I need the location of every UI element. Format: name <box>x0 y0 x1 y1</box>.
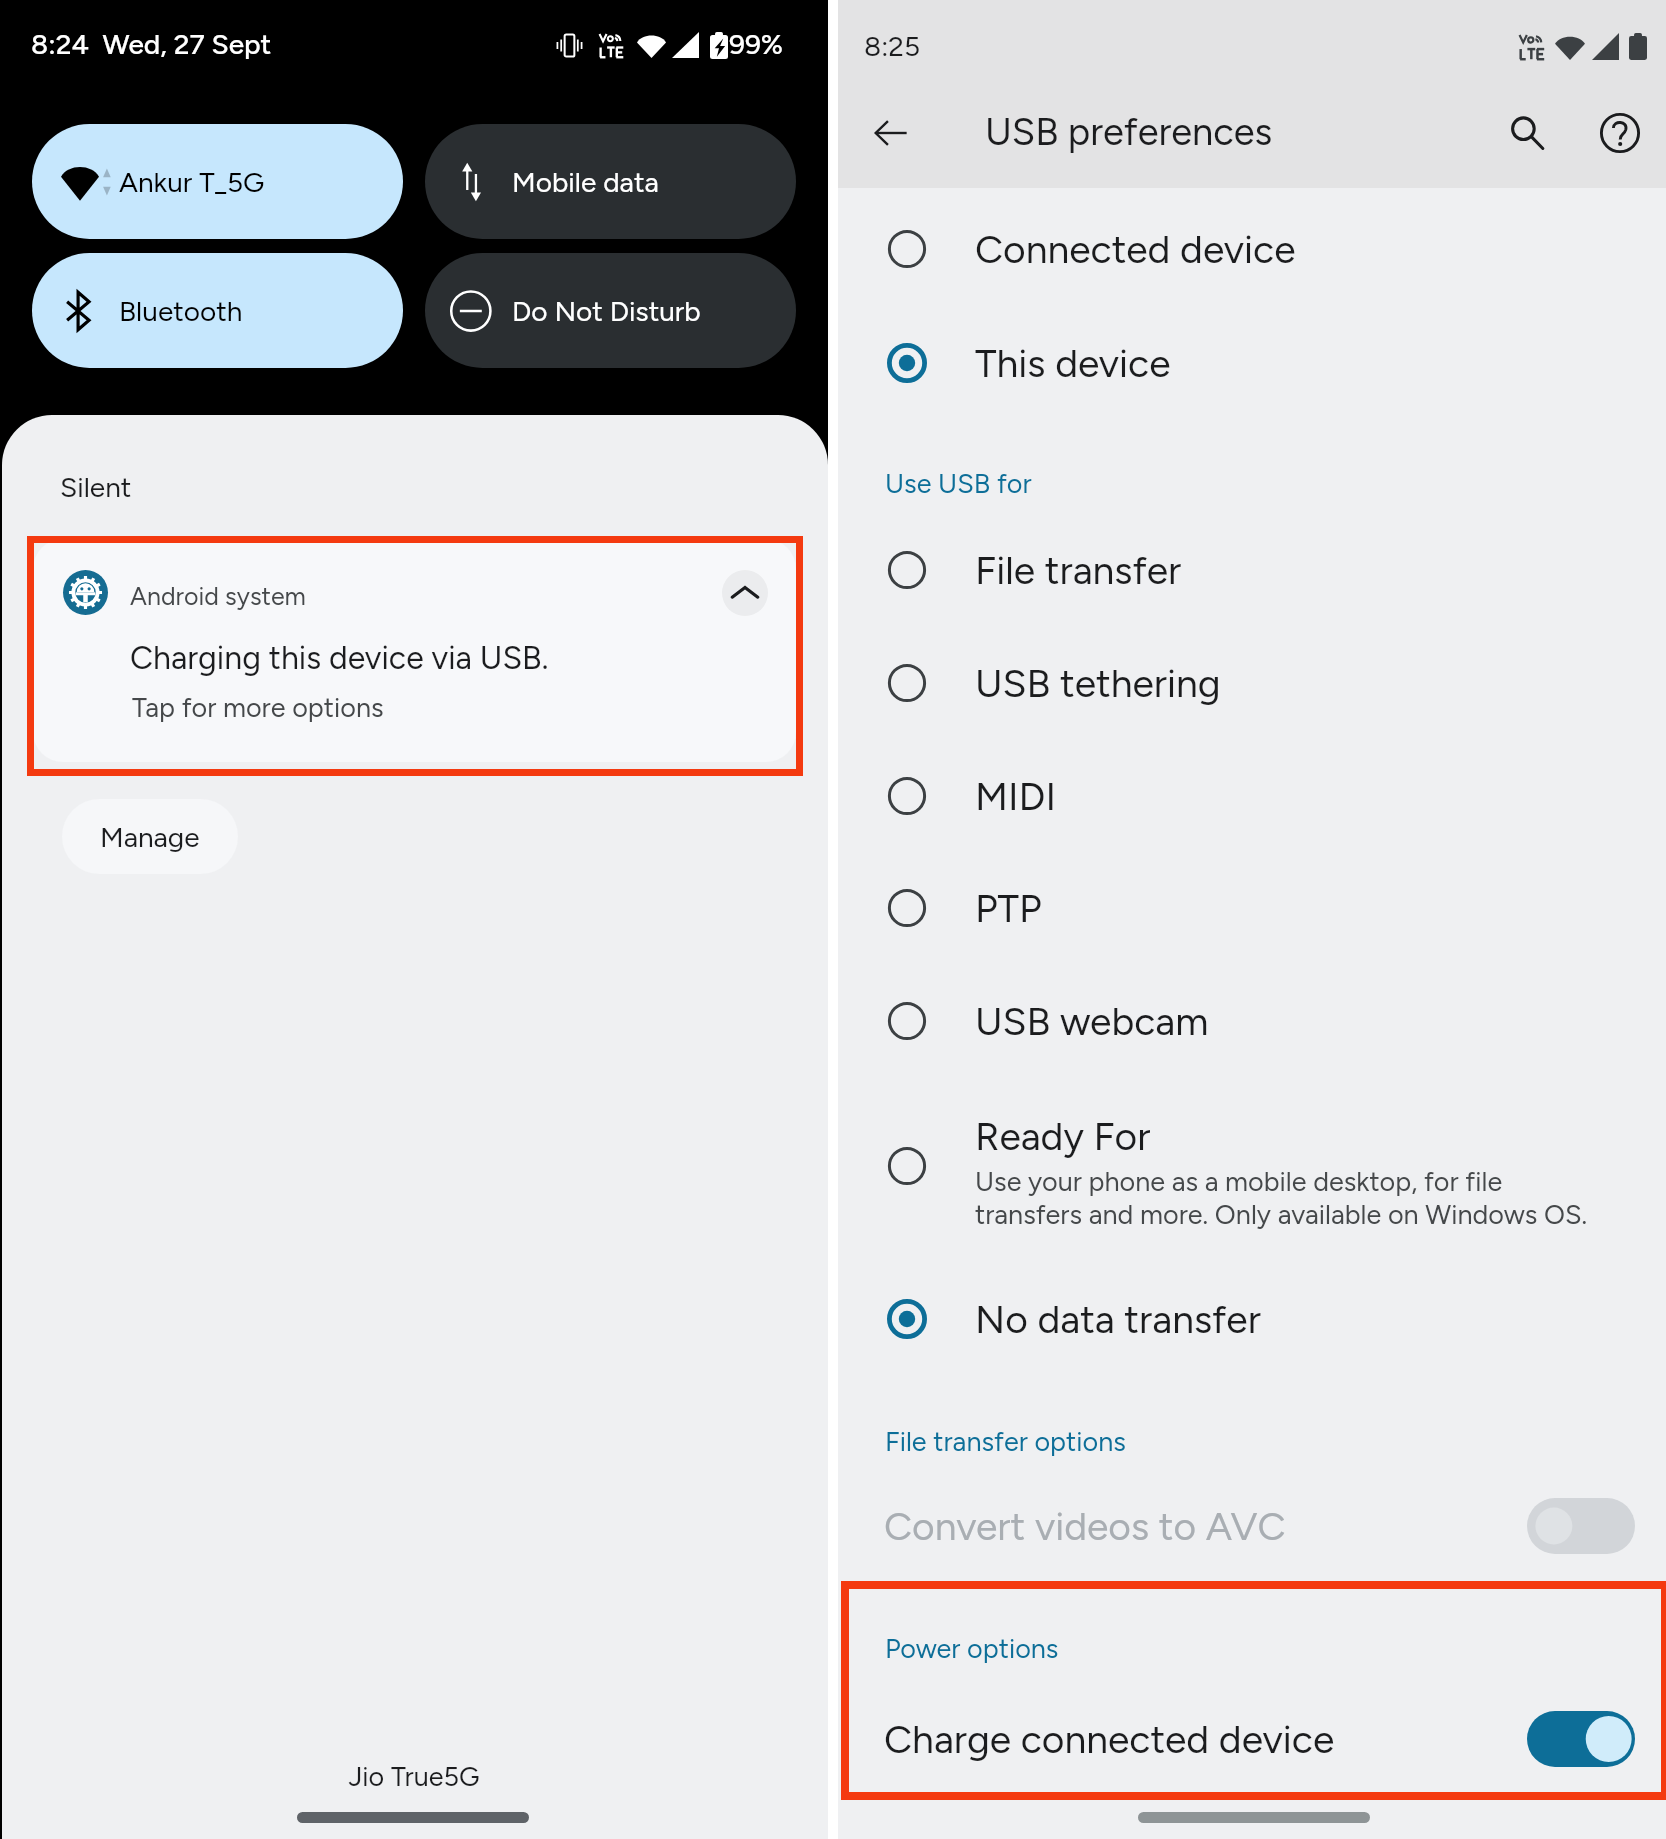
button[interactable]: PTP <box>838 852 1666 964</box>
staticText: Silent <box>60 470 132 504</box>
button[interactable]: No data transfer <box>838 1263 1666 1375</box>
button[interactable]: Android system <box>33 539 796 762</box>
staticText: File transfer options <box>885 1425 1126 1457</box>
button[interactable]: Bluetooth <box>32 253 403 368</box>
staticText: USB tethering <box>975 660 1221 707</box>
staticText: Ready For <box>975 1113 1151 1160</box>
button[interactable]: Ready For <box>838 1080 1666 1264</box>
button[interactable]: Charge connected device <box>838 1683 1666 1795</box>
staticText: Tap for more options <box>132 691 384 723</box>
staticText: USB preferences <box>985 109 1273 155</box>
button[interactable]: Do Not Disturb <box>425 253 796 368</box>
staticText: Jio True5G <box>0 1760 828 1792</box>
staticText: Use USB for <box>885 467 1032 499</box>
button[interactable]: USB tethering <box>838 627 1666 739</box>
button[interactable]: This device <box>838 307 1666 419</box>
staticText: Use your phone as a mobile desktop, for … <box>975 1165 1588 1231</box>
button[interactable]: Connected device <box>838 193 1666 305</box>
button[interactable]: Mobile data <box>425 124 796 239</box>
staticText: Manage <box>100 820 200 854</box>
staticText: Charging this device via USB. <box>130 639 549 677</box>
staticText: This device <box>975 340 1171 387</box>
staticText: Charge connected device <box>884 1716 1335 1763</box>
staticText: Do Not Disturb <box>512 294 701 328</box>
staticText: Convert videos to AVC <box>884 1503 1286 1550</box>
button[interactable]: Convert videos to AVC <box>838 1470 1666 1582</box>
staticText: 8:24 Wed, 27 Sept <box>31 27 272 61</box>
button[interactable]: Ankur T_5G <box>32 124 403 239</box>
staticText: Connected device <box>975 226 1296 273</box>
staticText: 8:25 <box>864 29 921 63</box>
button[interactable]: Manage <box>62 799 238 874</box>
button[interactable]: Back <box>862 104 920 162</box>
button[interactable]: USB webcam <box>838 965 1666 1077</box>
staticText: Power options <box>885 1632 1059 1664</box>
staticText: Bluetooth <box>119 294 243 328</box>
button[interactable]: Search <box>1498 104 1556 162</box>
staticText: Mobile data <box>512 165 659 199</box>
staticText: Android system <box>130 581 306 611</box>
staticText: Ankur T_5G <box>119 165 265 199</box>
staticText: File transfer <box>975 547 1182 594</box>
button[interactable]: Help <box>1591 104 1649 162</box>
button[interactable]: Collapse notification <box>722 570 768 616</box>
button[interactable]: File transfer <box>838 514 1666 626</box>
staticText: USB webcam <box>975 998 1209 1045</box>
staticText: 99% <box>729 27 784 61</box>
staticText: MIDI <box>975 773 1056 820</box>
staticText: PTP <box>975 885 1042 932</box>
staticText: No data transfer <box>975 1296 1261 1343</box>
button[interactable]: MIDI <box>838 740 1666 852</box>
